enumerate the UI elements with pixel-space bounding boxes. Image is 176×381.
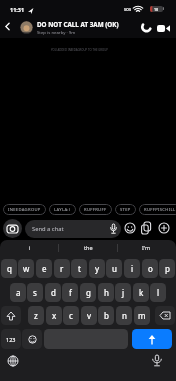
- button[interactable]: x: [46, 306, 62, 325]
- button[interactable]: r: [54, 259, 70, 278]
- button[interactable]: [20, 21, 33, 34]
- button[interactable]: c: [63, 306, 79, 325]
- button[interactable]: p: [159, 259, 175, 278]
- staticText: o: [148, 263, 153, 274]
- button[interactable]: k: [133, 283, 149, 302]
- staticText: n: [122, 310, 127, 321]
- button[interactable]: s: [27, 283, 43, 302]
- staticText: 10: [154, 7, 159, 12]
- staticText: i: [29, 244, 31, 251]
- staticText: b: [104, 310, 109, 321]
- staticText: 123: [6, 336, 16, 343]
- button[interactable]: 123: [1, 329, 21, 349]
- button[interactable]: I'm: [117, 240, 176, 254]
- staticText: DO NOT CALL AT 3AM (OK): [37, 20, 119, 29]
- button[interactable]: o: [142, 259, 158, 278]
- staticText: c: [69, 310, 73, 321]
- staticText: k: [139, 287, 144, 298]
- staticText: f: [69, 287, 72, 298]
- staticText: SOS: [124, 7, 131, 12]
- staticText: e: [42, 263, 47, 274]
- staticText: u: [112, 263, 117, 274]
- button[interactable]: m: [134, 306, 150, 325]
- staticText: the: [84, 244, 93, 251]
- staticText: RUFFRUFF: [84, 207, 107, 213]
- staticText: I'm: [142, 244, 151, 251]
- staticText: j: [122, 287, 125, 298]
- button[interactable]: n: [116, 306, 132, 325]
- button[interactable]: [141, 222, 153, 234]
- button[interactable]: [151, 355, 163, 367]
- button[interactable]: [124, 222, 136, 234]
- staticText: STEP: [120, 207, 131, 213]
- button[interactable]: [140, 22, 152, 33]
- button[interactable]: t: [71, 259, 87, 278]
- button[interactable]: g: [80, 283, 96, 302]
- button[interactable]: u: [106, 259, 122, 278]
- button[interactable]: RUFFRUFF: [79, 204, 112, 215]
- staticText: w: [23, 263, 30, 274]
- button[interactable]: [3, 219, 22, 238]
- button[interactable]: [132, 329, 172, 349]
- button[interactable]: b: [98, 306, 114, 325]
- button[interactable]: j: [115, 283, 131, 302]
- staticText: x: [52, 310, 57, 321]
- staticText: q: [7, 263, 12, 274]
- staticText: l: [157, 287, 160, 298]
- staticText: INEEDAGROUP: [8, 207, 41, 213]
- staticText: v: [87, 310, 92, 321]
- staticText: z: [34, 310, 38, 321]
- button[interactable]: q: [1, 259, 17, 278]
- button[interactable]: v: [81, 306, 97, 325]
- button[interactable]: a: [10, 283, 26, 302]
- button[interactable]: f: [62, 283, 78, 302]
- button[interactable]: [22, 329, 42, 349]
- button[interactable]: w: [18, 259, 34, 278]
- staticText: YOU ADDED INEEDAGROUP TO THE GROUP: [51, 48, 109, 52]
- button[interactable]: y: [89, 259, 105, 278]
- staticText: s: [33, 287, 37, 298]
- button[interactable]: [7, 355, 19, 367]
- staticText: i: [131, 263, 134, 274]
- staticText: g: [86, 287, 91, 298]
- staticText: Send a chat: [32, 225, 64, 233]
- button[interactable]: l: [150, 283, 166, 302]
- button[interactable]: [155, 306, 175, 325]
- button[interactable]: [1, 306, 21, 325]
- button[interactable]: Send a chat: [25, 220, 121, 238]
- staticText: h: [104, 287, 109, 298]
- button[interactable]: the: [59, 240, 118, 254]
- button[interactable]: RUFFPISCHILL: [139, 204, 176, 215]
- staticText: d: [51, 287, 56, 298]
- staticText: RUFFPISCHILL: [144, 207, 176, 213]
- staticText: r: [60, 263, 64, 274]
- button[interactable]: e: [36, 259, 52, 278]
- button[interactable]: i: [124, 259, 140, 278]
- button[interactable]: INEEDAGROUP: [3, 204, 46, 215]
- button[interactable]: [158, 222, 170, 234]
- staticText: y: [95, 263, 100, 274]
- staticText: 11:31: [10, 6, 25, 13]
- staticText: LAYLA:): [54, 207, 71, 213]
- staticText: a: [16, 287, 21, 298]
- button[interactable]: [3, 21, 12, 32]
- button[interactable]: i: [0, 240, 59, 254]
- button[interactable]: LAYLA:): [49, 204, 76, 215]
- button[interactable]: [157, 24, 170, 33]
- staticText: Step is nearby · 9m: [37, 29, 76, 35]
- staticText: t: [78, 263, 81, 274]
- button[interactable]: z: [28, 306, 44, 325]
- button[interactable]: h: [98, 283, 114, 302]
- button[interactable]: d: [45, 283, 61, 302]
- staticText: m: [138, 310, 146, 321]
- staticText: p: [165, 263, 170, 274]
- button[interactable]: STEP: [115, 204, 136, 215]
